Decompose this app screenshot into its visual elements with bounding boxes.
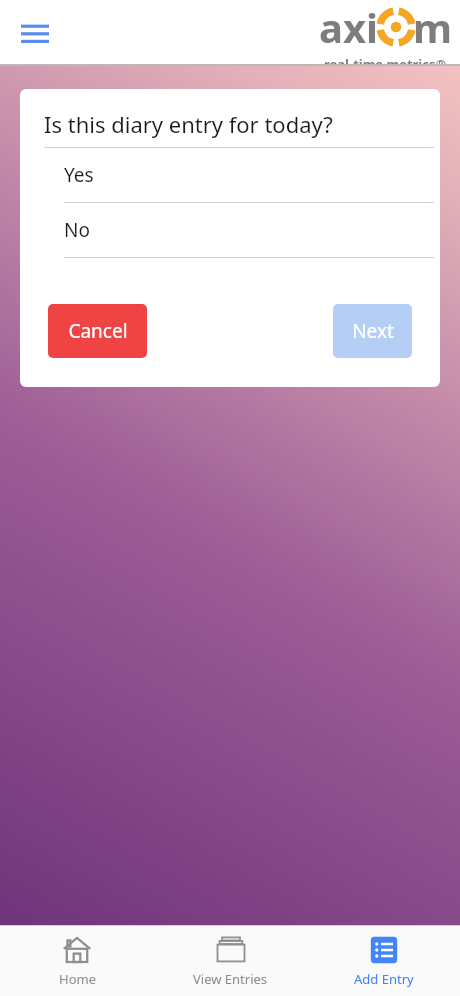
staticText: Home (59, 970, 96, 988)
button[interactable]: Cancel (48, 304, 147, 358)
staticText: axi (319, 0, 379, 54)
staticText: Cancel (68, 318, 128, 344)
staticText: real-time metrics® (324, 55, 447, 66)
button[interactable]: Yes (20, 148, 440, 203)
staticText: Add Entry (354, 970, 414, 988)
button[interactable]: No (20, 203, 440, 258)
staticText: Next (352, 318, 394, 344)
staticText: Yes (64, 162, 94, 188)
staticText: View Entries (193, 970, 268, 988)
button[interactable]: Open navigation menu (14, 12, 56, 54)
staticText: Is this diary entry for today? (44, 109, 333, 139)
button[interactable]: Add Entry (307, 926, 460, 996)
button[interactable]: Next (333, 304, 412, 358)
staticText: m (413, 0, 452, 54)
staticText: No (64, 217, 90, 243)
button[interactable]: View Entries (154, 926, 307, 996)
button[interactable]: Home (0, 926, 154, 996)
